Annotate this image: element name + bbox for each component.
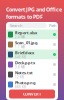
button[interactable]: CONVERT (9, 89, 55, 98)
staticText: 1.1 MB (15, 45, 25, 49)
staticText: Path (49, 23, 56, 28)
staticText: 12 KB (15, 75, 24, 79)
button[interactable]: Notes.txt (6, 69, 58, 79)
staticText: 3.8 MB (15, 65, 25, 69)
staticText: Photo.png (15, 80, 36, 85)
button[interactable]: Brief.docx (6, 49, 58, 59)
staticText: CONVERT (23, 91, 41, 97)
staticText: Convert JPG and Office formats to PDF (6, 6, 62, 20)
button[interactable]: Report.xlsx (6, 29, 58, 39)
button[interactable]: Scan_01.jpg (6, 39, 58, 49)
staticText: 880 KB (15, 85, 26, 89)
staticText: Brief.docx (15, 50, 34, 55)
staticText: Deck.pptx (15, 60, 35, 65)
staticText: Notes.txt (15, 70, 33, 75)
staticText: Search (10, 23, 22, 28)
staticText: Report.xlsx (15, 30, 37, 35)
staticText: 640 KB (15, 55, 26, 59)
staticText: Scan_01.jpg (15, 40, 38, 45)
staticText: 2.4 MB (15, 35, 25, 39)
button[interactable]: Deck.pptx (6, 59, 58, 69)
button[interactable]: Photo.png (6, 79, 58, 89)
